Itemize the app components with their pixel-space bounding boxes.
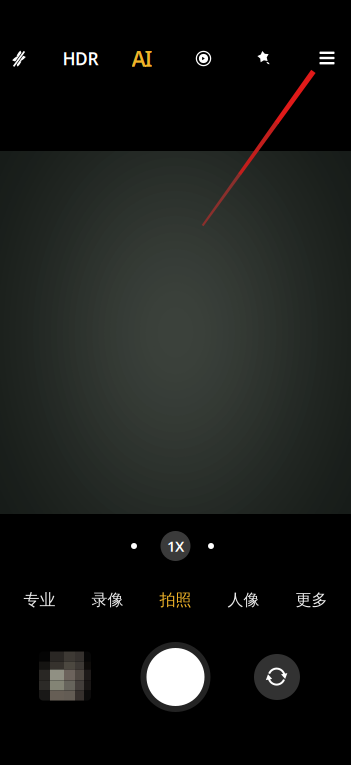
staticText: 人像 bbox=[227, 590, 259, 610]
button[interactable]: 1X bbox=[157, 528, 193, 564]
button[interactable]: AI bbox=[125, 38, 159, 78]
button[interactable]: Gallery bbox=[39, 651, 91, 700]
button[interactable]: HDR bbox=[60, 38, 100, 78]
button[interactable]: Switch camera bbox=[254, 654, 300, 700]
button[interactable]: 更多 bbox=[283, 587, 339, 613]
staticText: 专业 bbox=[23, 590, 55, 610]
button[interactable]: 人像 bbox=[215, 587, 271, 613]
staticText: 1X bbox=[167, 536, 184, 556]
staticText: 拍照 bbox=[159, 590, 191, 610]
button[interactable]: 录像 bbox=[79, 587, 135, 613]
staticText: 录像 bbox=[91, 590, 123, 610]
button[interactable]: Telephoto zoom bbox=[196, 531, 226, 561]
staticText: AI bbox=[132, 44, 152, 73]
button[interactable]: Shutter bbox=[139, 641, 211, 713]
button[interactable]: Flash off bbox=[0, 39, 39, 79]
button[interactable]: Motion photo bbox=[183, 38, 223, 78]
button[interactable]: Menu bbox=[307, 38, 347, 78]
staticText: HDR bbox=[63, 47, 98, 70]
button[interactable]: Filters bbox=[244, 38, 284, 78]
staticText: 更多 bbox=[295, 590, 327, 610]
button[interactable]: 拍照 bbox=[147, 587, 203, 613]
button[interactable]: Ultra wide zoom bbox=[119, 531, 149, 561]
button[interactable]: 专业 bbox=[11, 587, 67, 613]
